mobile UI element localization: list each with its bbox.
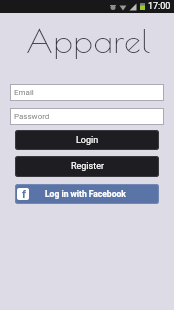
staticText: 17:00 xyxy=(148,1,171,12)
button[interactable]: Password xyxy=(10,108,164,125)
button[interactable]: Email xyxy=(10,84,164,101)
staticText: Apparel xyxy=(26,21,152,60)
staticText: Login xyxy=(76,135,99,146)
staticText: f xyxy=(22,188,26,200)
button[interactable]: Login xyxy=(15,130,159,150)
staticText: Email xyxy=(14,88,34,97)
staticText: Log in with Facebook xyxy=(45,189,126,199)
button[interactable]: Register xyxy=(15,156,159,177)
staticText: Password xyxy=(14,112,50,121)
button[interactable]: f xyxy=(15,184,159,204)
staticText: Register xyxy=(71,161,104,172)
